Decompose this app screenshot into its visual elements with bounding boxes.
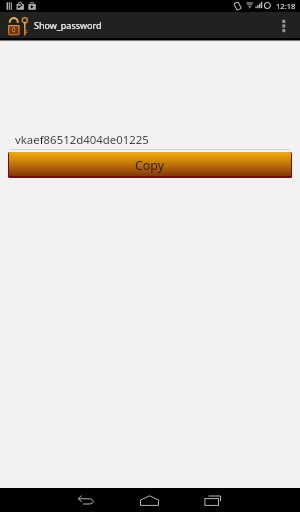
button[interactable]: More options [272,12,298,38]
button[interactable]: Home [118,488,181,512]
staticText: Copy [135,157,165,174]
staticText: vkaef86512d404de01225 [15,132,149,148]
button[interactable]: Copy [8,149,292,178]
staticText: Show_password [34,19,102,31]
button[interactable]: Back [0,488,118,512]
button[interactable]: Recent apps [181,488,300,512]
staticText: 12:18 [276,1,296,11]
